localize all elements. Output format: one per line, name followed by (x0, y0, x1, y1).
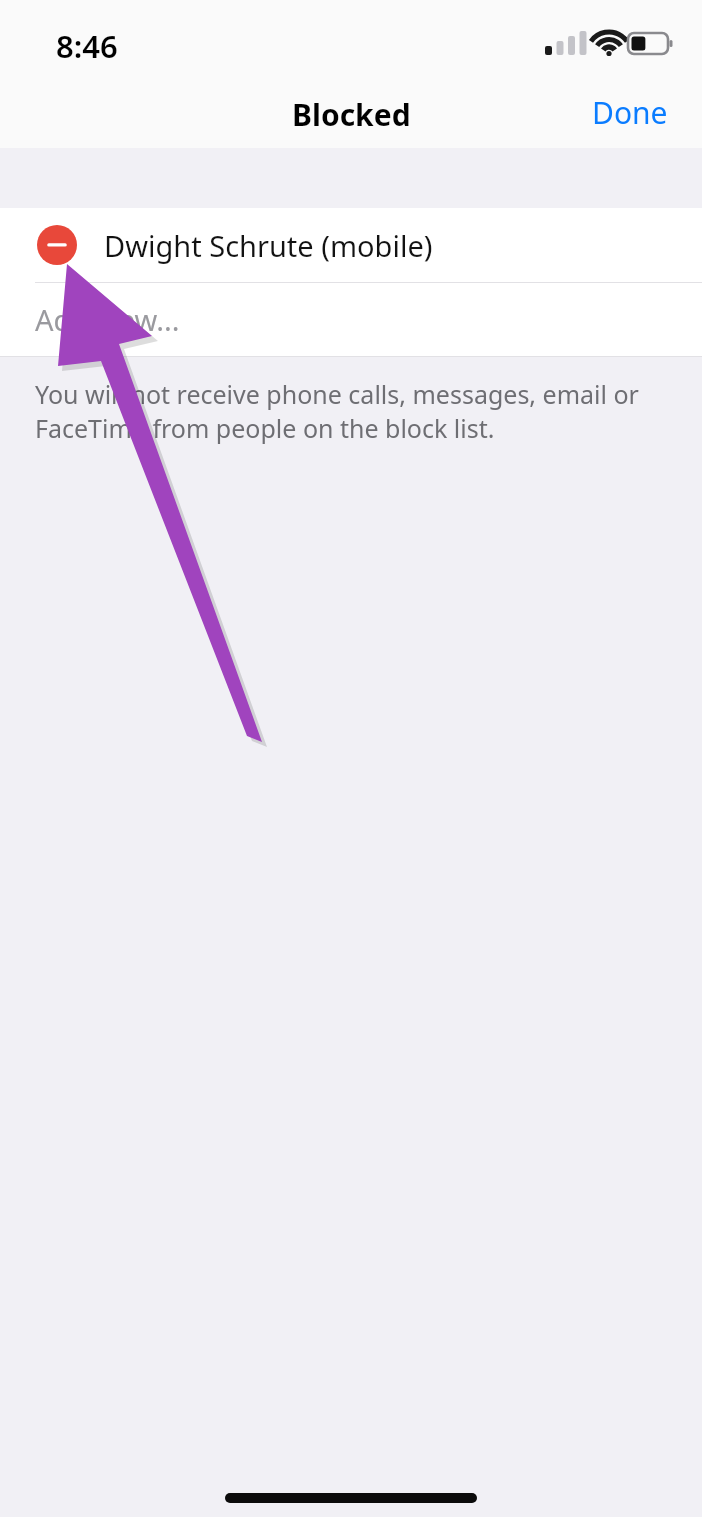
staticText: Add New... (35, 300, 180, 339)
button[interactable]: Remove Dwight Schrute from block list (37, 225, 77, 265)
button[interactable]: Add New... (0, 283, 702, 356)
staticText: Blocked (292, 94, 411, 135)
staticText: 8:46 (56, 25, 118, 67)
staticText: Dwight Schrute (mobile) (104, 226, 433, 265)
button[interactable]: Remove Dwight Schrute from block list (0, 208, 702, 282)
staticText: Done (592, 92, 668, 133)
staticText: You will not receive phone calls, messag… (35, 377, 672, 446)
button[interactable]: Done (558, 80, 702, 145)
